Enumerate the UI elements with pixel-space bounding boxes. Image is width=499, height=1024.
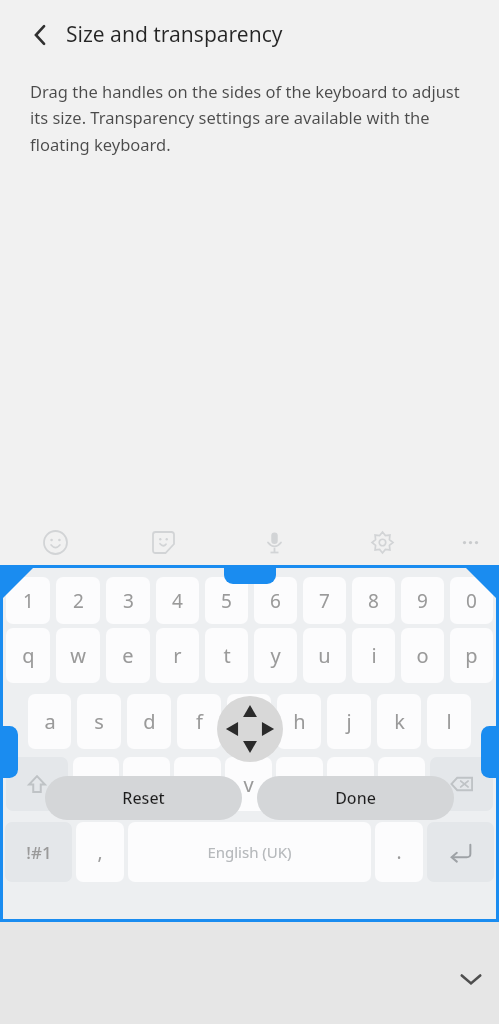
- button[interactable]: f: [177, 694, 221, 749]
- button[interactable]: Hide keyboard: [452, 960, 490, 998]
- button[interactable]: m: [378, 757, 425, 811]
- staticText: a: [44, 708, 56, 735]
- button[interactable]: c: [174, 757, 221, 811]
- staticText: f: [196, 708, 203, 735]
- button[interactable]: ,: [76, 822, 124, 882]
- button[interactable]: .: [375, 822, 423, 882]
- button[interactable]: 4: [156, 577, 199, 624]
- staticText: Reset: [122, 787, 165, 809]
- button[interactable]: 0: [450, 577, 493, 624]
- button[interactable]: 5: [205, 577, 248, 624]
- button[interactable]: u: [303, 628, 346, 683]
- button[interactable]: 9: [401, 577, 444, 624]
- button[interactable]: 3: [106, 577, 150, 624]
- button[interactable]: Reset: [45, 776, 242, 820]
- staticText: u: [318, 642, 331, 669]
- staticText: 4: [172, 588, 183, 614]
- staticText: j: [346, 708, 352, 735]
- staticText: z: [91, 771, 101, 798]
- staticText: 2: [73, 588, 84, 614]
- staticText: 1: [23, 588, 34, 614]
- button[interactable]: Resize keyboard height: [224, 567, 276, 584]
- staticText: ,: [97, 839, 103, 865]
- staticText: n: [344, 771, 357, 798]
- staticText: s: [94, 708, 104, 735]
- button[interactable]: Resize keyboard width right: [481, 726, 498, 778]
- staticText: k: [394, 708, 405, 735]
- staticText: 9: [417, 588, 428, 614]
- button[interactable]: o: [401, 628, 444, 683]
- button[interactable]: Settings: [360, 520, 404, 564]
- button[interactable]: 2: [56, 577, 100, 624]
- staticText: .: [396, 839, 402, 865]
- staticText: 8: [368, 588, 379, 614]
- button[interactable]: x: [123, 757, 170, 811]
- staticText: v: [243, 771, 254, 798]
- button[interactable]: l: [427, 694, 471, 749]
- button[interactable]: Done: [257, 776, 454, 820]
- staticText: 6: [270, 588, 281, 614]
- button[interactable]: 6: [254, 577, 297, 624]
- button[interactable]: i: [352, 628, 395, 683]
- staticText: English (UK): [207, 842, 292, 862]
- button[interactable]: Shift: [6, 757, 68, 811]
- staticText: d: [143, 708, 156, 735]
- staticText: c: [193, 771, 203, 798]
- button[interactable]: q: [6, 628, 50, 683]
- staticText: q: [22, 642, 35, 669]
- button[interactable]: Voice input: [252, 520, 296, 564]
- button[interactable]: 7: [303, 577, 346, 624]
- button[interactable]: e: [106, 628, 150, 683]
- button[interactable]: s: [77, 694, 121, 749]
- button[interactable]: Back: [20, 15, 60, 55]
- button[interactable]: z: [73, 757, 119, 811]
- staticText: b: [293, 771, 306, 798]
- button[interactable]: More options: [448, 520, 492, 564]
- button[interactable]: Emoji: [33, 520, 77, 564]
- button[interactable]: n: [327, 757, 374, 811]
- button[interactable]: Stickers: [141, 520, 185, 564]
- staticText: 7: [319, 588, 330, 614]
- button[interactable]: g: [227, 694, 271, 749]
- button[interactable]: p: [450, 628, 493, 683]
- button[interactable]: j: [327, 694, 371, 749]
- staticText: i: [371, 642, 377, 669]
- staticText: o: [416, 642, 429, 669]
- button[interactable]: r: [156, 628, 199, 683]
- staticText: y: [270, 642, 281, 669]
- button[interactable]: Enter: [427, 822, 494, 882]
- staticText: g: [243, 708, 256, 735]
- staticText: w: [70, 642, 86, 669]
- button[interactable]: English (UK): [128, 822, 371, 882]
- button[interactable]: !#1: [5, 822, 72, 882]
- staticText: l: [446, 708, 452, 735]
- staticText: Done: [335, 787, 376, 809]
- staticText: 0: [466, 588, 477, 614]
- button[interactable]: Resize keyboard width left: [1, 726, 18, 778]
- staticText: r: [173, 642, 182, 669]
- button[interactable]: v: [225, 757, 272, 811]
- staticText: 5: [221, 588, 232, 614]
- button[interactable]: t: [205, 628, 248, 683]
- staticText: t: [223, 642, 231, 669]
- button[interactable]: 8: [352, 577, 395, 624]
- button[interactable]: b: [276, 757, 323, 811]
- button[interactable]: Delete: [430, 757, 493, 811]
- staticText: h: [293, 708, 306, 735]
- button[interactable]: h: [277, 694, 321, 749]
- button[interactable]: d: [127, 694, 171, 749]
- staticText: Size and transparency: [66, 20, 283, 49]
- button[interactable]: y: [254, 628, 297, 683]
- staticText: !#1: [26, 841, 52, 864]
- button[interactable]: 1: [6, 577, 50, 624]
- staticText: p: [465, 642, 478, 669]
- staticText: Drag the handles on the sides of the key…: [30, 80, 465, 156]
- button[interactable]: w: [56, 628, 100, 683]
- button[interactable]: k: [377, 694, 421, 749]
- staticText: x: [141, 771, 152, 798]
- staticText: 3: [123, 588, 134, 614]
- staticText: m: [392, 771, 411, 798]
- button[interactable]: a: [28, 694, 71, 749]
- button[interactable]: Move keyboard: [217, 696, 283, 762]
- staticText: e: [122, 642, 134, 669]
